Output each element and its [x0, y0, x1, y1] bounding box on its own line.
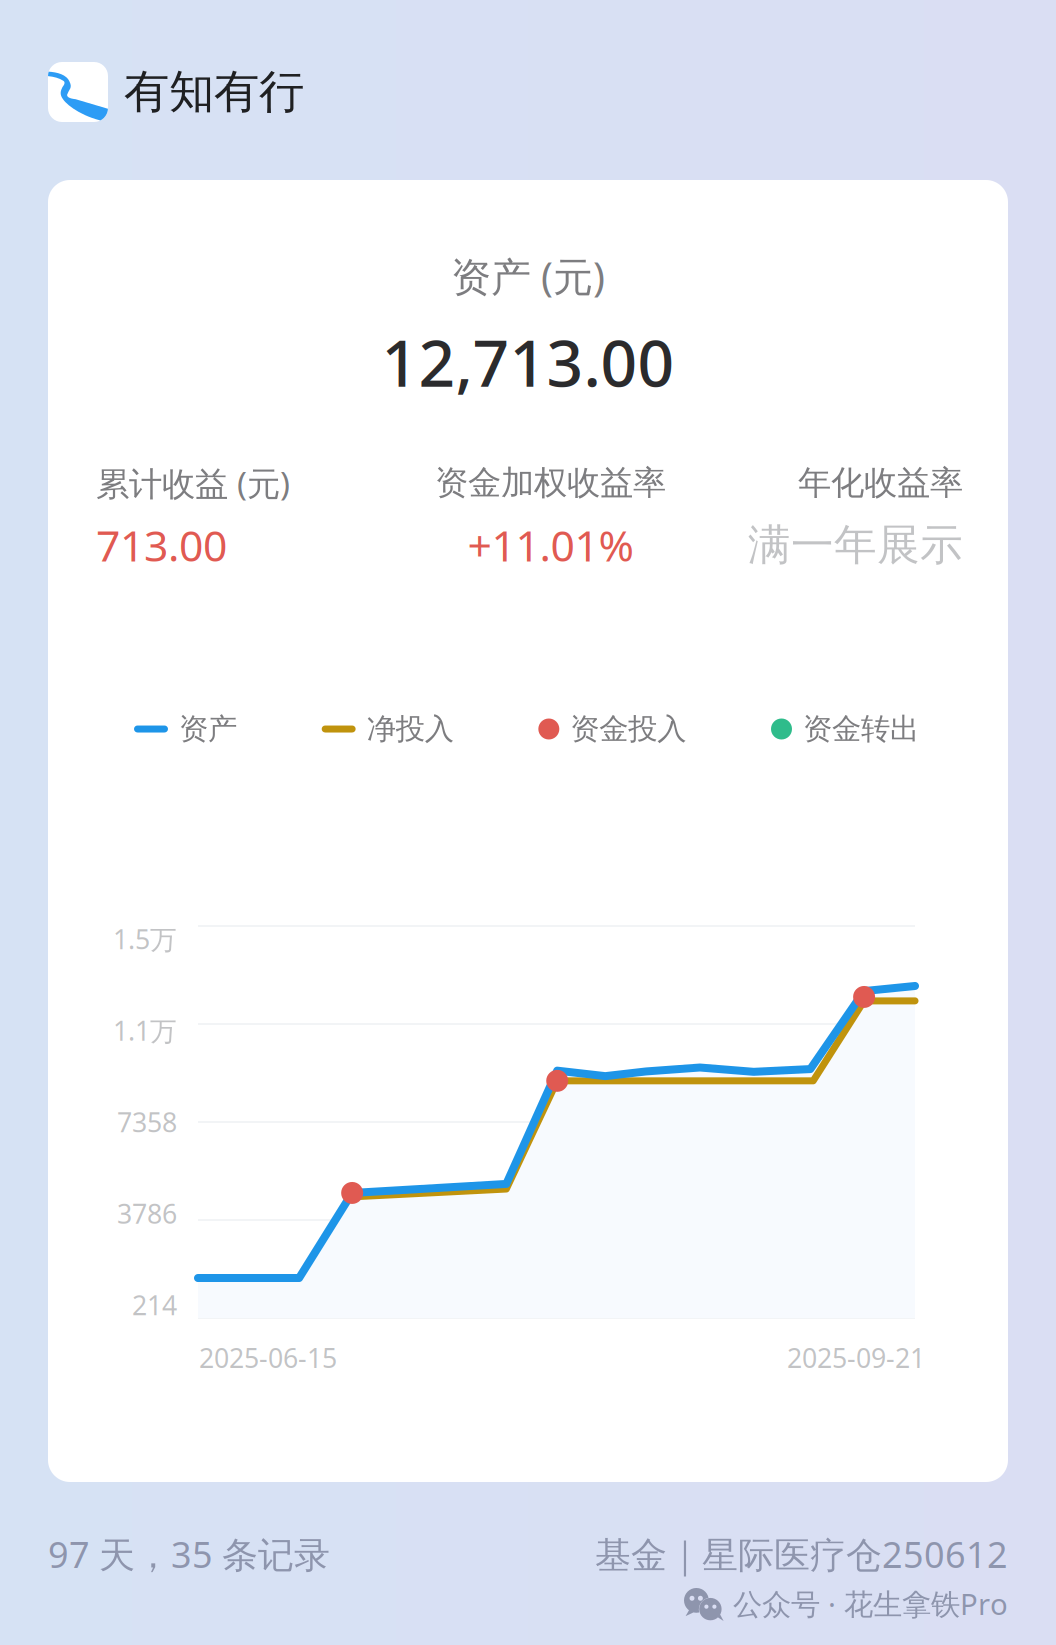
staticText: 12,713.00 — [381, 319, 674, 404]
staticText: 资金加权收益率 — [435, 462, 666, 503]
staticText: +11.01% — [467, 517, 633, 573]
staticText: 1.5万 — [113, 921, 177, 957]
staticText: 满一年展示 — [748, 519, 963, 571]
staticText: 3786 — [117, 1196, 177, 1231]
staticText: 1.1万 — [113, 1013, 177, 1048]
button[interactable]: 资产 — [134, 709, 237, 749]
staticText: 97 天，35 条记录 — [48, 1530, 330, 1578]
staticText: 有知有行 — [124, 64, 304, 120]
staticText: 214 — [132, 1287, 177, 1323]
staticText: 资产 — [179, 711, 237, 747]
button[interactable]: 资金投入 — [538, 709, 686, 749]
staticText: 2025-06-15 — [199, 1340, 337, 1375]
button[interactable]: 净投入 — [322, 709, 454, 749]
staticText: 年化收益率 — [798, 462, 963, 503]
staticText: 资金投入 — [570, 711, 686, 747]
button[interactable]: 资金转出 — [771, 709, 919, 749]
staticText: 2025-09-21 — [787, 1340, 925, 1375]
staticText: 净投入 — [367, 711, 454, 747]
staticText: 资产 (元) — [451, 249, 605, 302]
staticText: 7358 — [117, 1104, 177, 1140]
staticText: 资金转出 — [803, 711, 919, 747]
staticText: 累计收益 (元) — [96, 461, 290, 505]
staticText: 基金｜星际医疗仓250612 — [595, 1530, 1008, 1578]
button[interactable]: 有知有行 logo — [48, 62, 108, 122]
staticText: 713.00 — [96, 517, 227, 573]
staticText: 公众号 · 花生拿铁Pro — [733, 1584, 1008, 1623]
